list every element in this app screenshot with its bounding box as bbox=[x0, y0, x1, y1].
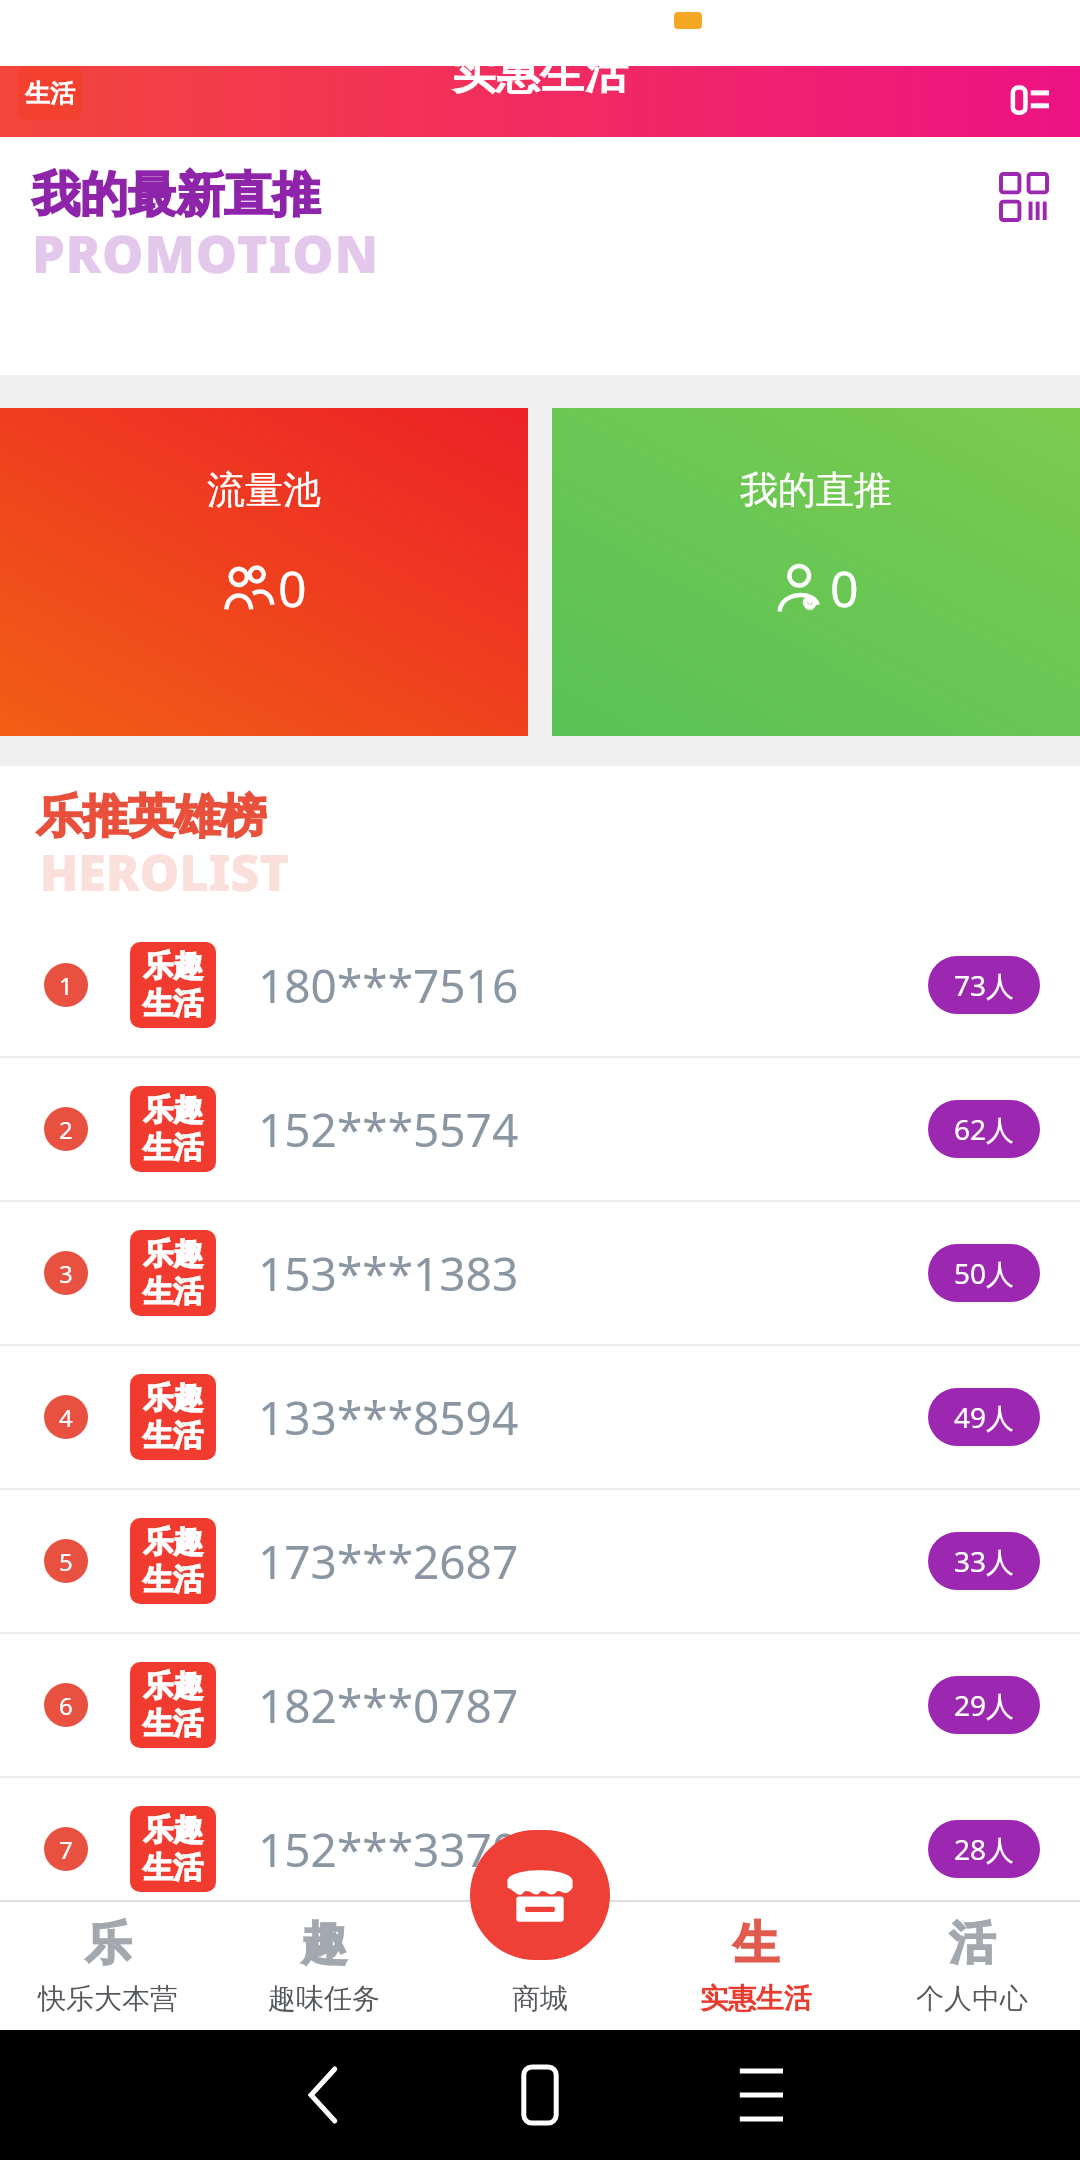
staticText: 趣 bbox=[301, 1915, 347, 1973]
staticText: PROMOTION bbox=[32, 217, 380, 288]
staticText: 73人 bbox=[954, 966, 1015, 1004]
button[interactable]: 7 bbox=[0, 1778, 1080, 1920]
staticText: 49人 bbox=[954, 1398, 1015, 1436]
staticText: 33人 bbox=[954, 1542, 1015, 1580]
button[interactable]: 2 bbox=[0, 1058, 1080, 1200]
button[interactable]: 4 bbox=[0, 1346, 1080, 1488]
button[interactable]: 活 bbox=[864, 1900, 1080, 2030]
staticText: 乐趣 bbox=[143, 947, 203, 985]
button[interactable]: 3 bbox=[0, 1202, 1080, 1344]
staticText: 133***8594 bbox=[258, 1386, 519, 1449]
staticText: 活 bbox=[949, 1915, 995, 1973]
button[interactable]: 生 bbox=[648, 1900, 864, 2030]
button[interactable]: 趣 bbox=[216, 1900, 432, 2030]
staticText: 0 bbox=[830, 554, 859, 622]
staticText: 180***7516 bbox=[258, 954, 519, 1017]
staticText: 实惠生活 bbox=[700, 1981, 812, 2016]
staticText: 173***2687 bbox=[258, 1530, 519, 1593]
staticText: 实惠生活 bbox=[452, 46, 628, 101]
staticText: 生活 bbox=[25, 78, 75, 109]
staticText: 商城 bbox=[512, 1981, 568, 2016]
staticText: 乐推英雄榜 bbox=[36, 788, 266, 846]
staticText: 4 bbox=[59, 1401, 73, 1434]
staticText: 7 bbox=[59, 1833, 73, 1866]
button[interactable]: 商城 bbox=[470, 1830, 610, 1960]
staticText: 生活 bbox=[143, 1273, 203, 1311]
staticText: 趣味任务 bbox=[268, 1981, 380, 2016]
staticText: 0 bbox=[278, 554, 307, 622]
staticText: 乐趣 bbox=[143, 1523, 203, 1561]
staticText: 生活 bbox=[143, 1561, 203, 1599]
staticText: 生活 bbox=[143, 1129, 203, 1167]
staticText: 182***0787 bbox=[258, 1674, 519, 1737]
staticText: 乐趣 bbox=[143, 1811, 203, 1849]
staticText: 乐趣 bbox=[143, 1667, 203, 1705]
staticText: 乐 bbox=[85, 1915, 131, 1973]
button[interactable]: 乐 bbox=[0, 1900, 216, 2030]
staticText: 6 bbox=[59, 1689, 73, 1722]
staticText: 152***5574 bbox=[258, 1098, 519, 1161]
staticText: 62人 bbox=[954, 1110, 1015, 1148]
staticText: 153***1383 bbox=[258, 1242, 519, 1305]
staticText: 29人 bbox=[954, 1686, 1015, 1724]
staticText: 乐趣 bbox=[143, 1091, 203, 1129]
staticText: HEROLIST bbox=[40, 838, 289, 906]
staticText: 个人中心 bbox=[916, 1981, 1028, 2016]
button[interactable]: Menu bbox=[1000, 72, 1060, 132]
button[interactable]: 1 bbox=[0, 914, 1080, 1056]
staticText: 5 bbox=[59, 1545, 73, 1578]
staticText: 生活 bbox=[143, 1849, 203, 1887]
staticText: 乐趣 bbox=[143, 1235, 203, 1273]
staticText: 3 bbox=[59, 1257, 73, 1290]
button[interactable]: 我的直推 bbox=[552, 408, 1080, 736]
staticText: 50人 bbox=[954, 1254, 1015, 1292]
staticText: 2 bbox=[59, 1113, 73, 1146]
staticText: 生 bbox=[733, 1915, 779, 1973]
staticText: 流量池 bbox=[207, 466, 321, 514]
staticText: 我的直推 bbox=[740, 466, 892, 514]
staticText: 生活 bbox=[143, 985, 203, 1023]
button[interactable]: 6 bbox=[0, 1634, 1080, 1776]
staticText: 28人 bbox=[954, 1830, 1015, 1868]
staticText: 生活 bbox=[143, 1705, 203, 1743]
staticText: 生活 bbox=[143, 1417, 203, 1455]
staticText: 152***3370 bbox=[258, 1818, 519, 1881]
staticText: 乐趣 bbox=[143, 1379, 203, 1417]
staticText: 1 bbox=[59, 969, 73, 1002]
button[interactable]: Scan QR code bbox=[988, 161, 1060, 233]
staticText: 快乐大本营 bbox=[38, 1981, 178, 2016]
button[interactable]: 5 bbox=[0, 1490, 1080, 1632]
button[interactable]: 生活 bbox=[18, 66, 82, 120]
staticText: 我的最新直推 bbox=[32, 165, 320, 225]
button[interactable]: 流量池 bbox=[0, 408, 528, 736]
